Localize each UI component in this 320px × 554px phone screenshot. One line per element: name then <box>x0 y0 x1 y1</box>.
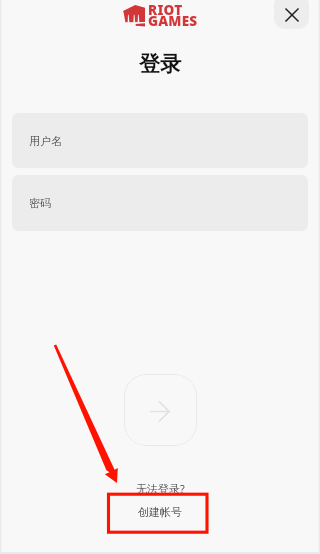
staticText: 用户名 <box>29 134 62 148</box>
staticText: RIOT GAMES <box>148 0 198 30</box>
staticText: 密码 <box>29 196 51 210</box>
staticText: 登录 <box>0 51 320 77</box>
staticText: 创建帐号 <box>138 505 182 519</box>
button[interactable]: 创建帐号 <box>128 499 192 525</box>
staticText: 无法登录? <box>136 481 185 496</box>
button[interactable]: 用户名 <box>12 113 308 168</box>
button[interactable]: Submit <box>124 374 197 446</box>
button[interactable]: Close <box>274 0 309 29</box>
button[interactable]: 无法登录? <box>126 474 195 499</box>
button[interactable]: 密码 <box>12 175 308 231</box>
